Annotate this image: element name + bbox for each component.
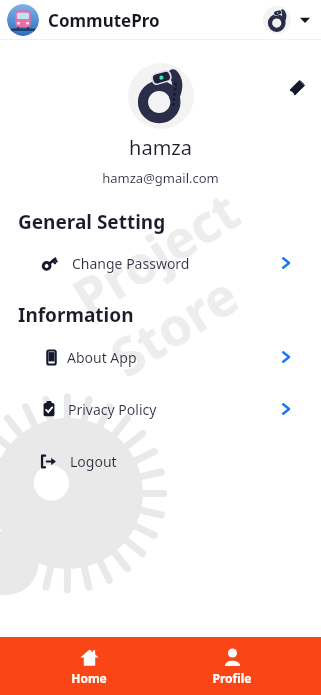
staticText: About App <box>67 348 137 367</box>
staticText: Information <box>18 302 134 328</box>
staticText: hamza@gmail.com <box>102 169 219 187</box>
button[interactable]: About App <box>0 338 321 376</box>
staticText: hamza <box>129 134 192 161</box>
button[interactable]: Logout <box>0 442 321 480</box>
button[interactable]: Account <box>263 6 291 34</box>
staticText: Logout <box>70 452 117 471</box>
staticText: CommutePro <box>48 9 160 32</box>
staticText: General Setting <box>18 209 166 235</box>
staticText: Change Password <box>72 254 190 273</box>
button[interactable]: Open menu <box>297 12 313 28</box>
button[interactable]: CommutePro logo <box>7 4 39 36</box>
button[interactable]: Home <box>34 637 144 695</box>
staticText: Privacy Policy <box>68 400 157 419</box>
staticText: Project Store <box>59 142 321 392</box>
button[interactable]: Privacy Policy <box>0 390 321 428</box>
button[interactable]: Profile <box>177 637 287 695</box>
button[interactable]: Profile picture <box>128 63 194 129</box>
button[interactable]: Edit profile <box>279 69 315 105</box>
staticText: Home <box>71 670 107 686</box>
staticText: Profile <box>212 670 252 686</box>
button[interactable]: Change Password <box>0 244 321 282</box>
